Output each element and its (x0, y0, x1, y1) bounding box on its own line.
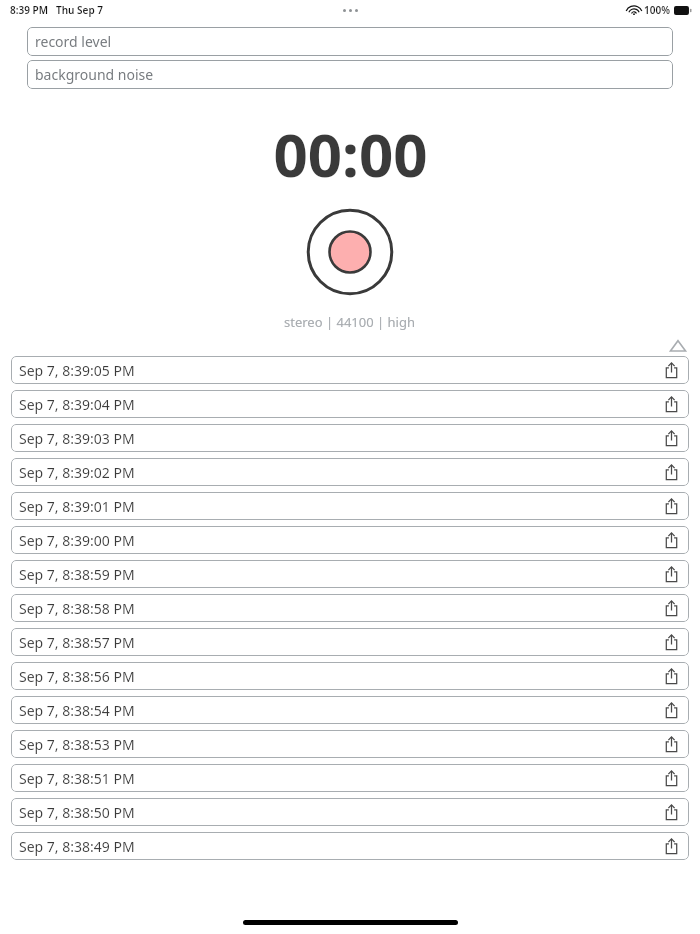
staticText: 100% (644, 3, 670, 17)
button[interactable]: Share (661, 462, 681, 482)
button[interactable]: Sep 7, 8:39:04 PM (11, 390, 689, 418)
button[interactable]: Share (661, 360, 681, 380)
button[interactable]: Share (661, 836, 681, 856)
button[interactable]: Share (661, 564, 681, 584)
button[interactable]: Share (661, 666, 681, 686)
staticText: background noise (35, 65, 154, 84)
button[interactable]: record level (27, 27, 673, 56)
staticText: Sep 7, 8:39:05 PM (19, 361, 661, 380)
button[interactable]: Sep 7, 8:39:01 PM (11, 492, 689, 520)
button[interactable]: Sep 7, 8:39:02 PM (11, 458, 689, 486)
button[interactable]: Sep 7, 8:38:54 PM (11, 696, 689, 724)
button[interactable]: Share (661, 496, 681, 516)
staticText: Sep 7, 8:39:00 PM (19, 531, 661, 550)
button[interactable]: Share (661, 598, 681, 618)
staticText: stereo | 44100 | high (284, 313, 416, 331)
button[interactable]: Share (661, 632, 681, 652)
button[interactable]: Collapse (667, 337, 689, 355)
staticText: Sep 7, 8:39:03 PM (19, 429, 661, 448)
staticText: Sep 7, 8:38:51 PM (19, 769, 661, 788)
staticText: Sep 7, 8:38:56 PM (19, 667, 661, 686)
staticText: Sep 7, 8:38:57 PM (19, 633, 661, 652)
staticText: Sep 7, 8:39:04 PM (19, 395, 661, 414)
button[interactable]: background noise (27, 60, 673, 89)
button[interactable]: Sep 7, 8:39:03 PM (11, 424, 689, 452)
staticText: 8:39 PM (10, 3, 48, 17)
button[interactable]: Sep 7, 8:38:57 PM (11, 628, 689, 656)
staticText: Sep 7, 8:38:53 PM (19, 735, 661, 754)
button[interactable]: Sep 7, 8:38:49 PM (11, 832, 689, 860)
staticText: Sep 7, 8:38:59 PM (19, 565, 661, 584)
staticText: Thu Sep 7 (56, 3, 103, 17)
button[interactable]: Share (661, 768, 681, 788)
button[interactable]: Share (661, 394, 681, 414)
button[interactable]: Sep 7, 8:38:58 PM (11, 594, 689, 622)
button[interactable]: Share (661, 530, 681, 550)
button[interactable]: Record (306, 208, 394, 296)
staticText: Sep 7, 8:39:02 PM (19, 463, 661, 482)
button[interactable]: Share (661, 700, 681, 720)
staticText: Sep 7, 8:38:58 PM (19, 599, 661, 618)
button[interactable]: Share (661, 802, 681, 822)
button[interactable]: Sep 7, 8:38:59 PM (11, 560, 689, 588)
staticText: Sep 7, 8:38:50 PM (19, 803, 661, 822)
staticText: Sep 7, 8:38:54 PM (19, 701, 661, 720)
staticText: 00:00 (273, 113, 428, 187)
button[interactable]: Sep 7, 8:38:51 PM (11, 764, 689, 792)
button[interactable]: Sep 7, 8:39:00 PM (11, 526, 689, 554)
button[interactable]: Sep 7, 8:38:53 PM (11, 730, 689, 758)
button[interactable]: Sep 7, 8:38:50 PM (11, 798, 689, 826)
staticText: record level (35, 32, 112, 51)
button[interactable]: Sep 7, 8:38:56 PM (11, 662, 689, 690)
button[interactable]: Share (661, 428, 681, 448)
button[interactable]: Share (661, 734, 681, 754)
staticText: Sep 7, 8:39:01 PM (19, 497, 661, 516)
staticText: Sep 7, 8:38:49 PM (19, 837, 661, 856)
button[interactable]: Sep 7, 8:39:05 PM (11, 356, 689, 384)
